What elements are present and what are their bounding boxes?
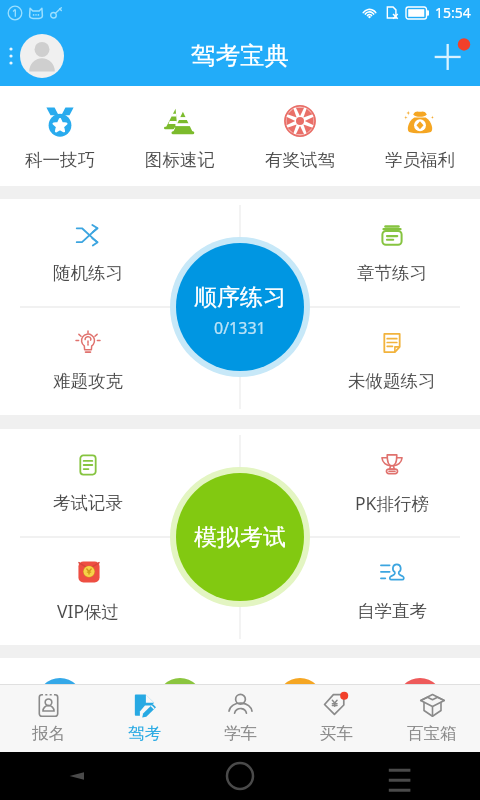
button[interactable]: Add [428,32,476,80]
button[interactable]: 图标速记 [120,86,240,186]
button[interactable]: 有奖试驾 [240,86,360,186]
button[interactable]: 顺序练习 [170,237,310,377]
button[interactable]: 考试记录 [0,429,176,537]
staticText: 模拟考试 [194,523,286,552]
button[interactable]: PK排行榜 [304,429,480,537]
button[interactable]: 学员福利 [360,86,480,186]
button[interactable]: 买车 [288,684,384,752]
staticText: 随机练习 [53,262,123,284]
button[interactable]: 学车 [192,684,288,752]
staticText: 15:54 [435,3,471,22]
button[interactable]: 科一技巧 [0,86,120,186]
staticText: 章节练习 [357,262,427,284]
button[interactable]: 自学直考 [304,537,480,645]
staticText: 买车 [320,723,353,744]
staticText: 自学直考 [357,600,427,622]
staticText: 有奖试驾 [265,149,335,171]
button[interactable]: 百宝箱 [384,684,480,752]
staticText: 顺序练习 [194,283,286,312]
button[interactable]: 报名 [0,684,96,752]
staticText: PK排行榜 [355,491,429,515]
staticText: 难题攻克 [53,370,123,392]
staticText: 驾考 [128,723,161,744]
staticText: 百宝箱 [407,723,457,744]
button[interactable]: VIP保过 [0,537,176,645]
staticText: 图标速记 [145,149,215,171]
staticText: 科一技巧 [25,149,95,171]
button[interactable]: Profile [20,34,64,78]
button[interactable]: 难题攻克 [0,307,176,415]
staticText: 学员福利 [385,149,455,171]
staticText: 学车 [224,723,257,744]
button[interactable]: 驾考 [96,684,192,752]
staticText: 考试记录 [53,492,123,514]
staticText: VIP保过 [57,599,120,623]
staticText: 未做题练习 [348,370,436,392]
button[interactable]: 模拟考试 [170,467,310,607]
staticText: 0/1331 [214,317,266,339]
staticText: 报名 [32,723,65,744]
button[interactable]: 章节练习 [304,199,480,307]
button[interactable]: 随机练习 [0,199,176,307]
button[interactable]: 未做题练习 [304,307,480,415]
staticText: 驾考宝典 [191,40,289,71]
